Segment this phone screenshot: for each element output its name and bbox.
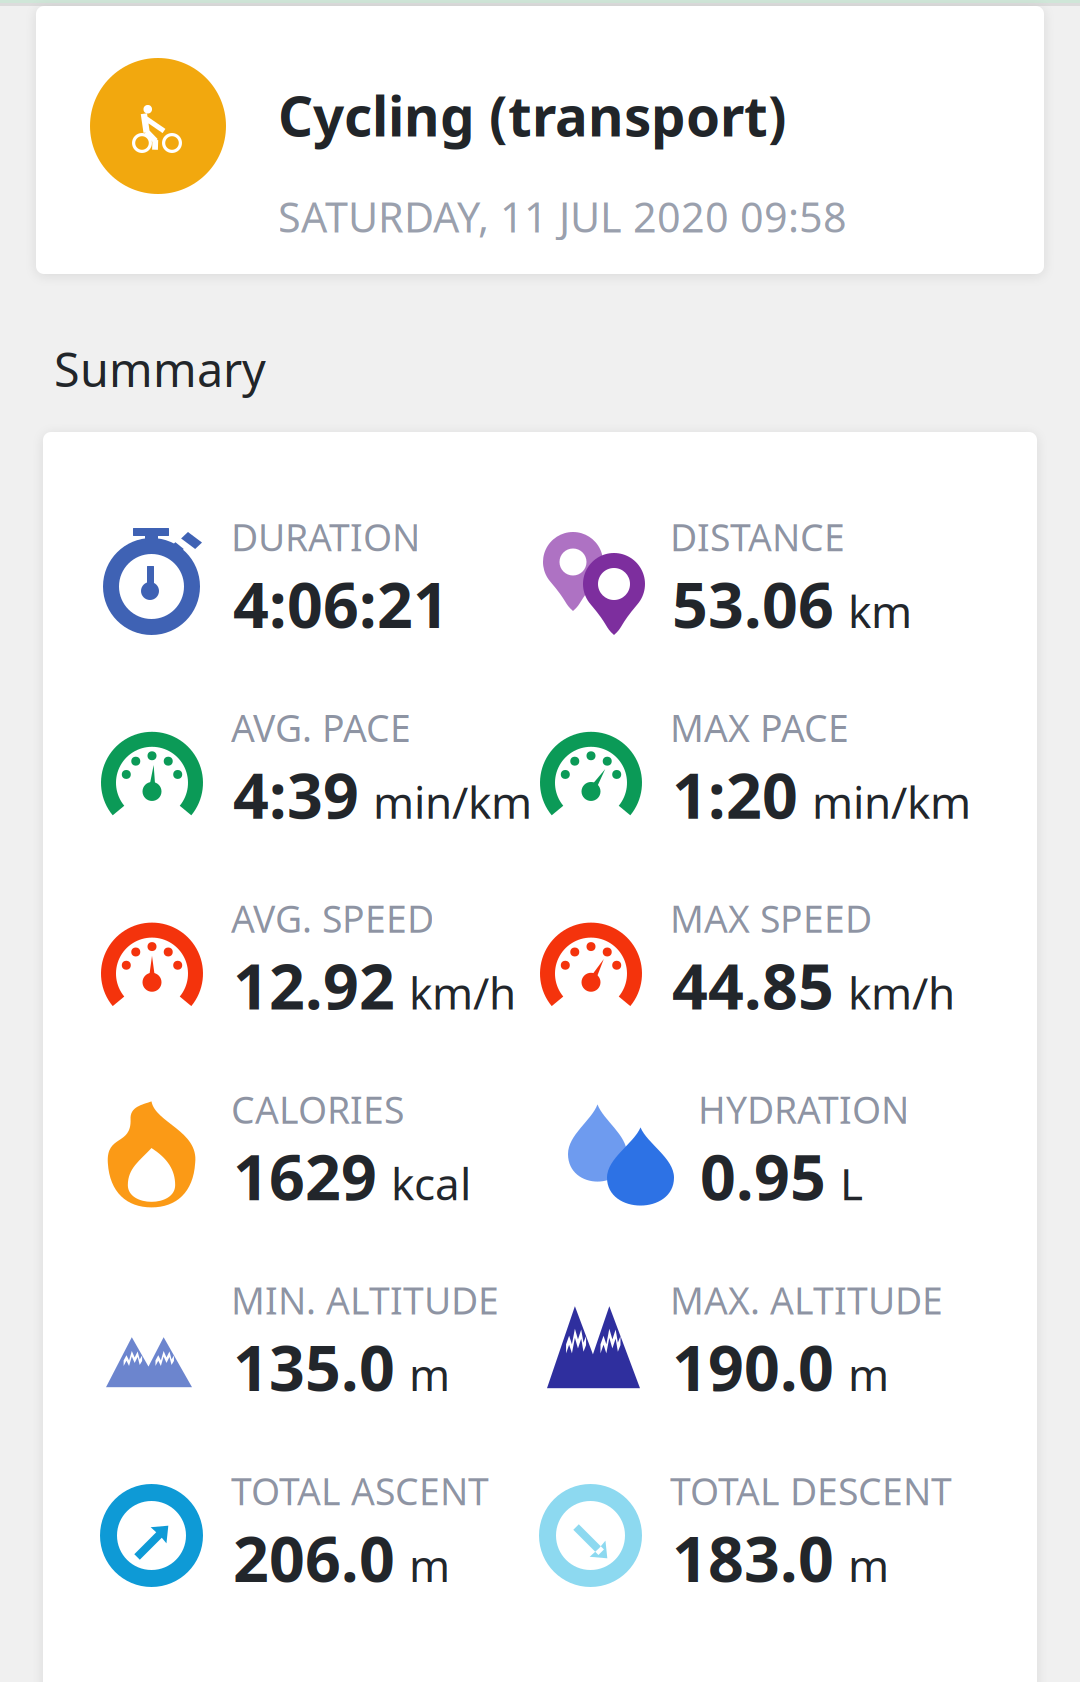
staticText: m [409,1345,450,1403]
staticText: 0.95 [700,1134,826,1218]
staticText: 12.92 [233,944,395,1027]
staticText: Summary [54,338,266,400]
staticText: MAX SPEED [670,894,872,943]
staticText: 190.0 [672,1325,834,1408]
staticText: km [848,582,912,640]
staticText: AVG. SPEED [231,894,434,943]
staticText: MAX PACE [670,703,849,752]
staticText: DURATION [231,512,420,562]
staticText: km/h [409,963,516,1022]
staticText: km/h [848,963,955,1022]
staticText: MIN. ALTITUDE [231,1275,499,1325]
staticText: DISTANCE [670,512,845,562]
staticText: 135.0 [233,1325,395,1408]
staticText: m [409,1536,450,1594]
button[interactable]: Cycling (transport) [36,6,1044,274]
staticText: HYDRATION [698,1084,909,1134]
staticText: AVG. PACE [231,703,411,752]
staticText: 4:06:21 [233,562,449,645]
staticText: 1:20 [672,753,798,836]
staticText: 183.0 [672,1516,834,1599]
staticText: 4:39 [233,753,359,836]
staticText: kcal [391,1154,471,1212]
staticText: min/km [812,772,971,831]
staticText: m [848,1536,889,1594]
staticText: L [840,1154,863,1212]
staticText: TOTAL DESCENT [670,1466,952,1516]
staticText: Cycling (transport) [278,79,787,152]
staticText: m [848,1345,889,1403]
staticText: CALORIES [231,1084,404,1134]
staticText: MAX. ALTITUDE [670,1275,943,1325]
staticText: 206.0 [233,1516,395,1599]
staticText: 44.85 [672,944,834,1027]
staticText: min/km [373,772,532,831]
staticText: 1629 [233,1134,377,1218]
staticText: SATURDAY, 11 JUL 2020 09:58 [278,189,847,244]
staticText: 53.06 [672,562,834,645]
staticText: TOTAL ASCENT [231,1466,489,1516]
